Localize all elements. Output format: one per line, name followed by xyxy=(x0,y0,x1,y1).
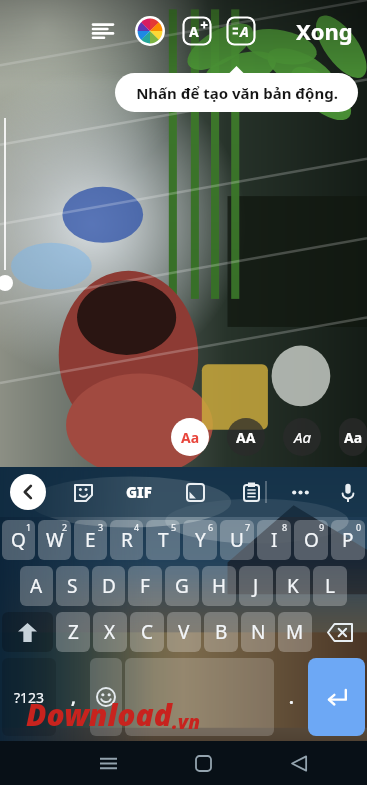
button[interactable]: , xyxy=(59,658,87,736)
staticText: , xyxy=(71,686,76,709)
button[interactable]: Back xyxy=(278,743,318,783)
staticText: Y xyxy=(195,527,206,553)
button[interactable]: J xyxy=(239,566,273,606)
button[interactable]: GIF xyxy=(124,480,154,504)
staticText: 8 xyxy=(282,521,288,533)
staticText: O xyxy=(304,527,319,553)
button[interactable]: W xyxy=(38,520,71,560)
staticText: I xyxy=(271,527,278,553)
button[interactable]: Xong xyxy=(292,12,357,50)
staticText: L xyxy=(325,573,335,599)
button[interactable]: Y xyxy=(183,520,217,560)
staticText: K xyxy=(287,573,299,599)
button[interactable]: C xyxy=(130,612,164,652)
button[interactable]: Aa xyxy=(283,418,321,456)
staticText: 5 xyxy=(171,521,177,533)
staticText: AA xyxy=(236,428,256,447)
button[interactable]: More options xyxy=(285,477,315,507)
button[interactable]: Translate xyxy=(180,477,210,507)
staticText: V xyxy=(178,619,190,645)
button[interactable]: L xyxy=(313,566,347,606)
staticText: H xyxy=(212,573,227,599)
staticText: .vn xyxy=(172,709,200,735)
staticText: T xyxy=(158,527,169,553)
button[interactable]: ?123 xyxy=(2,658,56,736)
button[interactable]: Enter xyxy=(308,658,365,736)
staticText: Aa xyxy=(181,428,200,447)
button[interactable]: N xyxy=(241,612,275,652)
staticText: P xyxy=(342,527,354,553)
button[interactable]: E xyxy=(74,520,107,560)
button[interactable]: Text background xyxy=(226,16,256,46)
staticText: C xyxy=(141,619,154,645)
button[interactable]: Voice input xyxy=(339,477,357,507)
button[interactable]: Space xyxy=(125,658,274,736)
button[interactable]: . xyxy=(277,658,305,736)
button[interactable]: Back xyxy=(10,474,46,510)
staticText: 4 xyxy=(134,521,140,533)
button[interactable]: Z xyxy=(56,612,90,652)
button[interactable]: X xyxy=(93,612,127,652)
button[interactable]: Home xyxy=(183,743,223,783)
staticText: S xyxy=(67,573,78,599)
button[interactable]: Nhấn để tạo văn bản động. xyxy=(115,73,358,112)
button[interactable]: K xyxy=(276,566,310,606)
button[interactable]: Aa xyxy=(339,418,367,456)
button[interactable]: Text effects xyxy=(182,16,212,46)
button[interactable]: P xyxy=(331,520,365,560)
button[interactable]: G xyxy=(165,566,199,606)
button[interactable]: Stickers xyxy=(68,477,98,507)
button[interactable]: Text color xyxy=(132,13,168,49)
staticText: X xyxy=(104,619,116,645)
staticText: J xyxy=(253,573,259,599)
button[interactable]: O xyxy=(294,520,328,560)
button[interactable]: U xyxy=(220,520,254,560)
button[interactable]: S xyxy=(56,566,89,606)
staticText: B xyxy=(215,619,228,645)
staticText: Z xyxy=(68,619,79,645)
button[interactable]: R xyxy=(110,520,143,560)
staticText: Nhấn để tạo văn bản động. xyxy=(136,83,338,103)
staticText: U xyxy=(230,527,244,553)
staticText: Download xyxy=(26,694,172,735)
button[interactable]: M xyxy=(278,612,312,652)
staticText: E xyxy=(85,527,96,553)
button[interactable]: Align text xyxy=(86,14,120,48)
staticText: 0 xyxy=(356,521,362,533)
button[interactable]: A xyxy=(20,566,53,606)
button[interactable]: T xyxy=(146,520,180,560)
staticText: R xyxy=(121,527,133,553)
button[interactable]: F xyxy=(128,566,162,606)
staticText: Xong xyxy=(296,16,353,46)
button[interactable]: V xyxy=(167,612,201,652)
staticText: 2 xyxy=(62,521,68,533)
button[interactable]: Shift xyxy=(2,612,53,652)
staticText: M xyxy=(286,619,304,645)
button[interactable]: Clipboard xyxy=(236,477,266,507)
staticText: 9 xyxy=(319,521,325,533)
button[interactable]: Emoji xyxy=(90,658,122,736)
button[interactable]: I xyxy=(257,520,291,560)
button[interactable]: Backspace xyxy=(315,612,365,652)
staticText: 3 xyxy=(98,521,104,533)
button[interactable]: Aa xyxy=(171,418,209,456)
staticText: N xyxy=(251,619,266,645)
staticText: A xyxy=(240,22,249,41)
button[interactable]: H xyxy=(202,566,236,606)
staticText: A xyxy=(189,22,199,41)
staticText: ?123 xyxy=(14,688,45,707)
staticText: . xyxy=(289,686,294,709)
staticText: A xyxy=(30,573,43,599)
button[interactable]: D xyxy=(92,566,125,606)
button[interactable]: Recent apps xyxy=(88,743,128,783)
staticText: Aa xyxy=(294,427,311,447)
button[interactable]: B xyxy=(204,612,238,652)
staticText: Q xyxy=(11,527,26,553)
staticText: W xyxy=(46,527,64,553)
staticText: 7 xyxy=(245,521,251,533)
staticText: Aa xyxy=(344,428,363,447)
staticText: G xyxy=(175,573,189,599)
button[interactable]: Q xyxy=(2,520,35,560)
staticText: F xyxy=(140,573,150,599)
button[interactable]: AA xyxy=(227,418,265,456)
